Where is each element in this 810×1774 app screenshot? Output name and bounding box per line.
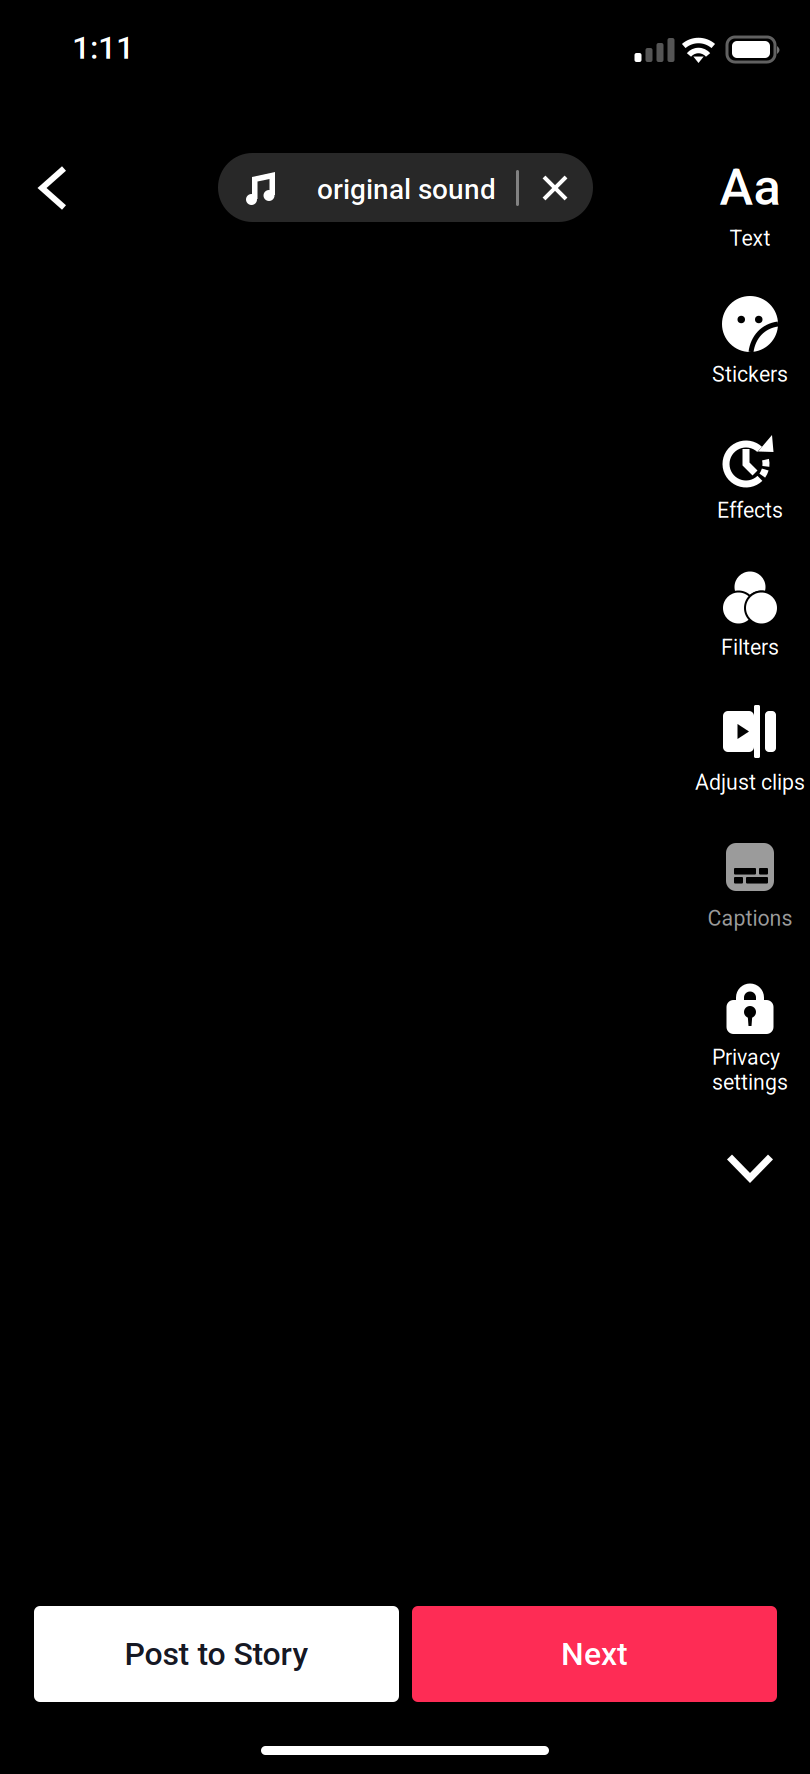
button[interactable]: Filters bbox=[670, 571, 810, 665]
button[interactable]: Back bbox=[13, 148, 93, 228]
staticText: Effects bbox=[717, 498, 783, 523]
staticText: Captions bbox=[707, 906, 792, 931]
button[interactable]: Captions bbox=[670, 843, 810, 936]
staticText: Text bbox=[729, 226, 770, 251]
staticText: Privacy settings bbox=[712, 1045, 788, 1095]
button[interactable]: Privacy settings bbox=[670, 978, 810, 1075]
staticText: 1:11 bbox=[72, 29, 134, 66]
staticText: Stickers bbox=[712, 362, 788, 387]
staticText: original sound bbox=[317, 173, 496, 206]
button[interactable]: Aa bbox=[670, 168, 810, 256]
button[interactable]: Effects bbox=[670, 432, 810, 528]
button[interactable]: Post to Story bbox=[34, 1606, 399, 1702]
button[interactable]: Stickers bbox=[670, 296, 810, 392]
staticText: Filters bbox=[721, 635, 779, 660]
staticText: Aa bbox=[719, 158, 780, 217]
button[interactable]: Collapse tools bbox=[670, 1156, 810, 1179]
staticText: Post to Story bbox=[124, 1635, 308, 1673]
button[interactable]: Next bbox=[412, 1606, 777, 1702]
button[interactable]: Adjust clips bbox=[670, 705, 810, 800]
button[interactable]: original sound bbox=[218, 153, 593, 222]
staticText: Adjust clips bbox=[695, 770, 805, 795]
staticText: Next bbox=[561, 1635, 628, 1673]
